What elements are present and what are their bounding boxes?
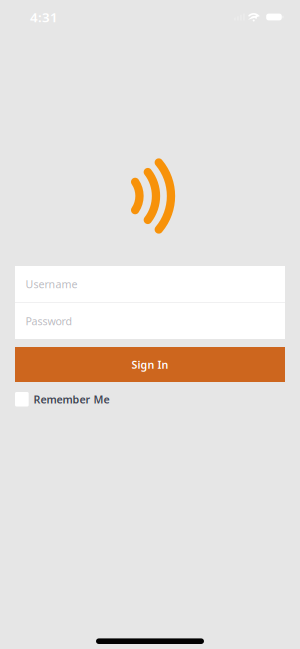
staticText: Sign In (131, 357, 168, 372)
button[interactable]: Remember Me (0, 392, 300, 406)
staticText: Remember Me (33, 392, 109, 406)
staticText: Username (25, 277, 77, 291)
button[interactable]: Username (15, 266, 285, 302)
button[interactable]: Sign In (15, 347, 285, 382)
staticText: Password (25, 314, 72, 328)
button[interactable]: Password (15, 303, 285, 339)
staticText: 4:31 (30, 8, 58, 26)
